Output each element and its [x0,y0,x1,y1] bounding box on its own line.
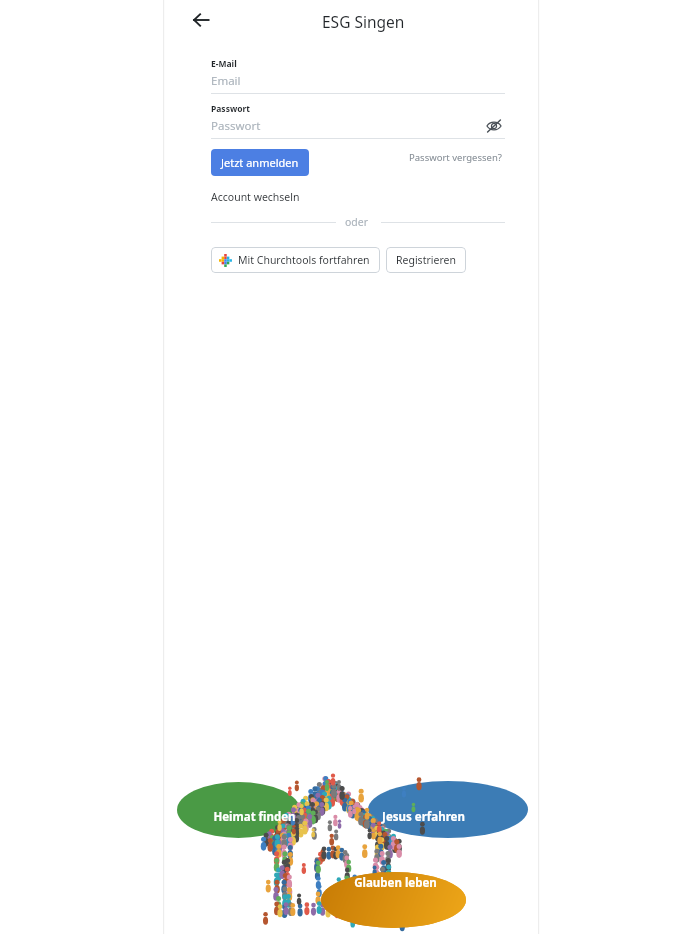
staticText: Email [211,73,241,89]
staticText: Passwort [211,118,261,134]
staticText: Passwort vergessen? [409,151,502,164]
staticText: Jetzt anmelden [221,155,299,170]
staticText: Registrieren [396,253,456,267]
staticText: ESG Singen [322,11,405,32]
staticText: Passwort [211,103,250,115]
staticText: E-Mail [211,58,237,70]
staticText: Mit Churchtools fortfahren [238,253,370,267]
button[interactable]: Show password [482,114,505,137]
button[interactable]: Passwort vergessen? [405,148,506,167]
button[interactable]: Registrieren [386,247,466,273]
button[interactable]: Jetzt anmelden [211,149,309,176]
staticText: Account wechseln [211,190,300,204]
button[interactable]: Back [188,7,214,33]
staticText: Glauben leben [354,875,437,891]
staticText: oder [345,215,369,229]
staticText: Heimat finden [213,809,296,825]
staticText: Jesus erfahren [382,809,465,825]
button[interactable]: Account wechseln [207,187,304,207]
button[interactable]: Mit Churchtools fortfahren [211,247,380,273]
